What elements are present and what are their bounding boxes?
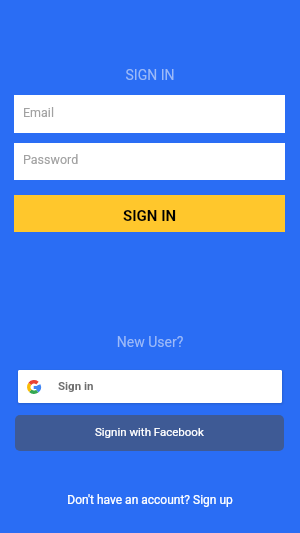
- staticText: SIGN IN: [0, 67, 300, 83]
- button[interactable]: Password: [14, 143, 285, 180]
- staticText: SIGN IN: [123, 207, 177, 225]
- button[interactable]: SIGN IN: [14, 195, 285, 232]
- button[interactable]: Don't have an account? Sign up: [67, 493, 233, 507]
- button[interactable]: Google: [18, 370, 282, 403]
- button[interactable]: Signin with Facebook: [15, 415, 284, 451]
- staticText: Signin with Facebook: [95, 425, 204, 438]
- staticText: New User?: [0, 334, 300, 350]
- staticText: Email: [23, 105, 54, 120]
- staticText: Sign in: [58, 379, 94, 392]
- staticText: Password: [23, 152, 79, 167]
- button[interactable]: Email: [14, 95, 285, 133]
- other: Google: [27, 380, 41, 394]
